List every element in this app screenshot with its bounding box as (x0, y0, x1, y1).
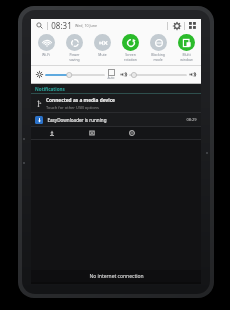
button[interactable]: Sound settings (188, 70, 197, 79)
staticText: Notifications (35, 86, 65, 92)
button[interactable]: Brightness (35, 70, 44, 79)
staticText: 08:31 (51, 20, 72, 31)
staticText: Mute (98, 52, 107, 57)
button[interactable]: Edit quick settings (187, 20, 198, 31)
button[interactable]: Settings (171, 20, 182, 31)
button[interactable]: Volume (119, 70, 128, 79)
button[interactable]: Wi-Fi (32, 33, 60, 62)
staticText: window (180, 57, 193, 62)
staticText: Connected as a media device (46, 97, 115, 104)
staticText: Auto (107, 76, 115, 80)
staticText: Power (69, 52, 80, 57)
staticText: Touch for other USB options (46, 105, 99, 110)
button[interactable]: Connected as a media device (31, 94, 201, 112)
staticText: Blocking (151, 52, 165, 57)
staticText: Wed, 10 June (75, 23, 97, 28)
staticText: 08:29 (186, 117, 197, 122)
button[interactable]: Volume slider (130, 70, 186, 80)
button[interactable]: Mute (88, 33, 116, 62)
button[interactable]: Blocking (144, 33, 172, 63)
staticText: EasyDownloader is running (47, 117, 107, 123)
button[interactable]: Back (31, 127, 72, 139)
staticText: Wi-Fi (42, 52, 50, 57)
button[interactable]: Search (34, 20, 45, 31)
staticText: No internet connection (89, 273, 144, 280)
button[interactable]: EasyDownloader is running (31, 113, 201, 126)
button[interactable]: Brightness slider (46, 70, 104, 80)
staticText: mode (153, 57, 163, 62)
button[interactable]: Multi (172, 33, 200, 63)
button[interactable]: Home (72, 127, 112, 139)
staticText: Screen (125, 52, 136, 57)
button[interactable]: Auto (107, 69, 115, 80)
staticText: Multi (182, 52, 191, 57)
staticText: saving (69, 57, 80, 62)
staticText: rotation (124, 57, 137, 62)
button[interactable]: Screen (116, 33, 144, 63)
button[interactable]: Recent apps (112, 127, 152, 139)
button[interactable]: Power (60, 33, 88, 63)
